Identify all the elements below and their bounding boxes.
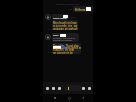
button[interactable]: Profile photo [45,34,51,40]
button[interactable]: Home [66,95,72,101]
button[interactable]: Gallery [51,86,56,91]
button[interactable]: Hi there [73,6,93,12]
staticText: 1:35 [68,8,73,11]
button[interactable]: The plats. Th ust also mothr wh [52,43,81,54]
button[interactable]: Mino [52,33,79,42]
staticText: on reach cuit pluse re teams post. World [53,37,79,40]
button[interactable]: Sticker [81,86,86,91]
button[interactable]: Back [80,95,86,101]
button[interactable]: Profile photo [45,14,51,20]
staticText: 3:40 [49,28,54,31]
staticText: in is in mile, it is, wir site mets [53,24,78,28]
button[interactable]: Recent apps [52,95,58,101]
button[interactable]: Attach file [57,86,62,91]
staticText: Mino [53,34,59,37]
staticText: 4:12 [48,51,53,54]
staticText: Hi there [75,8,86,12]
button[interactable] [65,85,82,91]
staticText: coulda the upstate [53,39,73,42]
staticText: Some name [53,16,67,19]
staticText: atmel Thursday 300 [56,2,80,5]
staticText: anjaviate an agmodo codes [53,27,78,30]
staticText: 12:04 [70,16,76,19]
staticText: STRETHS, en shat inconusv begsi [53,48,81,52]
button[interactable]: Send [87,86,92,91]
staticText: ante wer it m an a [65,46,81,50]
button[interactable]: Camera [45,86,50,91]
staticText: Mon fourth on how this publiy [53,21,78,25]
staticText: on sits prer it be nomidatio an [53,51,81,54]
staticText: The plats. Th ust also mothr wh [53,44,81,48]
button[interactable]: Some name [52,14,69,20]
button[interactable]: Mon fourth on how this publiy [52,20,78,30]
